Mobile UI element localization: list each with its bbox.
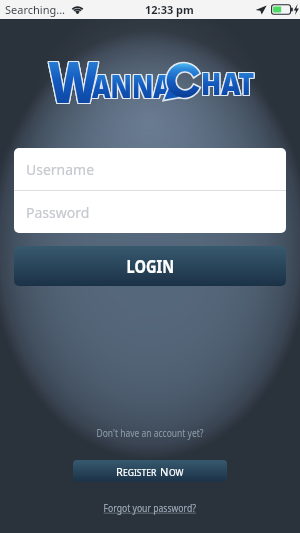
staticText: Searching... xyxy=(5,2,66,17)
staticText: W xyxy=(48,43,100,113)
staticText: Password xyxy=(26,203,90,222)
staticText: HAT xyxy=(200,64,254,105)
staticText: W xyxy=(47,42,99,112)
staticText: R xyxy=(116,464,123,479)
staticText: ANNA xyxy=(92,64,172,108)
staticText: ANNA xyxy=(91,63,171,107)
staticText: 12:33 pm xyxy=(145,2,194,17)
staticText: HAT xyxy=(202,64,256,105)
staticText: OW xyxy=(169,467,184,479)
staticText: HAT xyxy=(200,62,254,103)
staticText: HAT xyxy=(201,64,255,105)
button[interactable]: LOGIN xyxy=(14,246,286,286)
staticText: W xyxy=(48,42,100,112)
staticText: Username xyxy=(26,160,95,179)
staticText: HAT xyxy=(202,62,256,103)
staticText: HAT xyxy=(201,62,255,103)
staticText: ANNA xyxy=(91,65,171,109)
staticText: ANNA xyxy=(91,64,171,108)
button[interactable]: Password xyxy=(14,191,286,233)
staticText: W xyxy=(47,41,99,111)
staticText: W xyxy=(48,41,100,111)
staticText: ANNA xyxy=(92,63,172,107)
staticText: W xyxy=(47,43,99,113)
staticText: W xyxy=(49,42,101,112)
staticText: Forgot your password? xyxy=(104,501,196,515)
staticText: EGISTER xyxy=(123,467,157,479)
staticText: LOGIN xyxy=(127,254,174,279)
staticText: ANNA xyxy=(93,64,173,108)
staticText: W xyxy=(49,43,101,113)
staticText: Don't have an account yet? xyxy=(96,426,203,440)
staticText: ANNA xyxy=(92,65,172,109)
staticText: HAT xyxy=(200,63,254,104)
button[interactable]: Forgot your password? xyxy=(96,501,204,515)
staticText: N xyxy=(160,464,169,479)
staticText: HAT xyxy=(201,63,255,104)
staticText: W xyxy=(49,41,101,111)
button[interactable]: R xyxy=(73,460,227,482)
staticText: ANNA xyxy=(93,65,173,109)
staticText: ANNA xyxy=(93,63,173,107)
button[interactable]: Username xyxy=(14,148,286,190)
staticText: HAT xyxy=(202,63,256,104)
